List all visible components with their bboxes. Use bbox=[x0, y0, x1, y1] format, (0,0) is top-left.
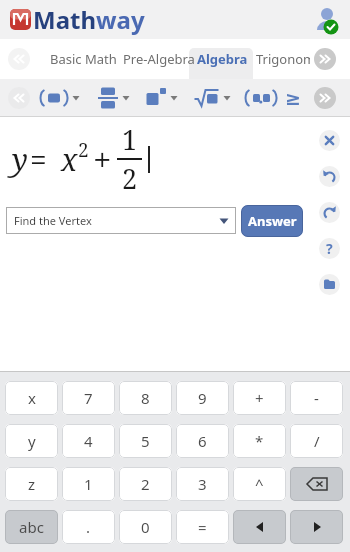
staticText: = bbox=[198, 517, 207, 537]
button[interactable] bbox=[314, 6, 342, 34]
button[interactable] bbox=[166, 83, 180, 113]
button[interactable]: 9 bbox=[176, 381, 229, 415]
button[interactable] bbox=[40, 83, 68, 113]
staticText: 2 bbox=[78, 137, 89, 163]
button[interactable] bbox=[68, 83, 82, 113]
staticText: 2 bbox=[141, 474, 150, 494]
button[interactable] bbox=[319, 274, 340, 295]
button[interactable]: - bbox=[290, 381, 343, 415]
button[interactable] bbox=[290, 510, 343, 544]
staticText: - bbox=[314, 388, 319, 408]
button[interactable]: 3 bbox=[176, 467, 229, 501]
staticText: 1 bbox=[84, 474, 93, 494]
button[interactable]: 4 bbox=[62, 424, 115, 458]
button[interactable] bbox=[118, 83, 132, 113]
staticText: 7 bbox=[84, 388, 93, 408]
button[interactable]: x bbox=[5, 381, 58, 415]
button[interactable] bbox=[233, 510, 286, 544]
staticText: + bbox=[93, 137, 112, 182]
staticText: 2 bbox=[122, 160, 138, 197]
staticText: y bbox=[28, 431, 36, 451]
staticText: 4 bbox=[84, 431, 93, 451]
button[interactable]: 6 bbox=[176, 424, 229, 458]
staticText: . bbox=[86, 517, 91, 537]
button[interactable]: Basic Math bbox=[50, 50, 117, 68]
button[interactable] bbox=[189, 48, 253, 79]
staticText: ? bbox=[326, 239, 333, 258]
button[interactable]: z bbox=[5, 467, 58, 501]
staticText: 0 bbox=[141, 517, 150, 537]
staticText: abc bbox=[19, 517, 44, 537]
staticText: x bbox=[61, 139, 78, 180]
button[interactable] bbox=[319, 166, 340, 187]
staticText: z bbox=[28, 474, 36, 494]
staticText: 3 bbox=[198, 474, 207, 494]
button[interactable]: Algebra bbox=[197, 50, 248, 68]
button[interactable] bbox=[8, 87, 30, 109]
button[interactable]: y bbox=[5, 424, 58, 458]
button[interactable]: Find the Vertex bbox=[6, 207, 236, 234]
staticText: 9 bbox=[198, 388, 207, 408]
staticText: * bbox=[255, 431, 264, 451]
button[interactable] bbox=[245, 83, 276, 113]
button[interactable]: ^ bbox=[233, 467, 286, 501]
button[interactable]: . bbox=[62, 510, 115, 544]
staticText: Find the Vertex bbox=[14, 213, 216, 228]
staticText: = bbox=[30, 139, 47, 180]
button[interactable]: * bbox=[233, 424, 286, 458]
staticText: y bbox=[12, 139, 28, 180]
button[interactable]: 8 bbox=[119, 381, 172, 415]
button[interactable]: abc bbox=[5, 510, 58, 544]
button[interactable]: 7 bbox=[62, 381, 115, 415]
button[interactable] bbox=[319, 202, 340, 223]
staticText: Mathway bbox=[33, 3, 145, 36]
button[interactable]: / bbox=[290, 424, 343, 458]
staticText: x bbox=[28, 388, 36, 408]
button[interactable]: Answer bbox=[241, 205, 303, 237]
button[interactable]: 1 bbox=[62, 467, 115, 501]
button[interactable]: ? bbox=[319, 238, 340, 259]
button[interactable] bbox=[314, 87, 336, 109]
button[interactable] bbox=[314, 48, 336, 70]
button[interactable] bbox=[194, 83, 219, 113]
button[interactable] bbox=[8, 48, 30, 70]
staticText: + bbox=[255, 388, 264, 408]
button[interactable]: Trigonometry bbox=[256, 50, 310, 68]
staticText: 6 bbox=[198, 431, 207, 451]
button[interactable]: 0 bbox=[119, 510, 172, 544]
staticText: / bbox=[314, 431, 320, 451]
button[interactable] bbox=[290, 467, 343, 501]
button[interactable]: 5 bbox=[119, 424, 172, 458]
button[interactable]: = bbox=[176, 510, 229, 544]
button[interactable]: Pre-Algebra bbox=[123, 50, 195, 68]
staticText: 5 bbox=[141, 431, 150, 451]
staticText: Answer bbox=[248, 212, 297, 230]
button[interactable] bbox=[219, 83, 233, 113]
staticText: 1 bbox=[122, 121, 138, 158]
staticText: ^ bbox=[255, 474, 264, 494]
button[interactable] bbox=[146, 83, 166, 113]
button[interactable]: 2 bbox=[119, 467, 172, 501]
button[interactable]: + bbox=[233, 381, 286, 415]
button[interactable] bbox=[98, 83, 118, 113]
button[interactable] bbox=[319, 130, 340, 151]
button[interactable]: ≥ bbox=[285, 87, 301, 109]
staticText: 8 bbox=[141, 388, 150, 408]
